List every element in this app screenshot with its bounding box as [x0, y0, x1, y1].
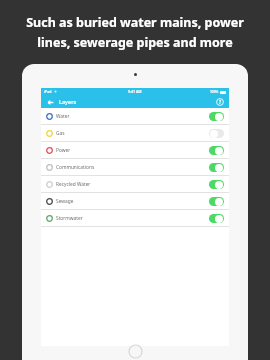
button[interactable]: Power	[41, 142, 229, 158]
staticText: lines, sewerage pipes and more	[37, 34, 233, 51]
button[interactable]: Toggle off	[209, 129, 224, 138]
staticText: Sewage	[56, 198, 74, 205]
staticText: ?	[219, 99, 222, 105]
button[interactable]: Help	[215, 97, 225, 107]
button[interactable]: Water	[41, 108, 229, 124]
staticText: Power	[56, 147, 71, 154]
staticText: Communications	[56, 164, 95, 171]
button[interactable]: Toggle on	[209, 112, 224, 121]
button[interactable]: Toggle on	[209, 180, 224, 189]
button[interactable]: Home	[128, 344, 143, 359]
staticText: iPad	[44, 89, 52, 94]
button[interactable]: Recycled Water	[41, 176, 229, 192]
staticText: Recycled Water	[56, 181, 91, 188]
button[interactable]: Toggle on	[209, 197, 224, 206]
staticText: 100%	[210, 90, 219, 94]
staticText: Stormwater	[56, 215, 83, 222]
staticText: Such as buried water mains, power	[26, 14, 244, 31]
staticText: Water	[56, 113, 70, 120]
button[interactable]: Gas	[41, 125, 229, 141]
button[interactable]: Toggle on	[209, 214, 224, 223]
button[interactable]: Toggle on	[209, 163, 224, 172]
button[interactable]: Toggle on	[209, 146, 224, 155]
staticText: Layers	[59, 98, 77, 105]
staticText: 9:41 AM	[128, 89, 142, 94]
button[interactable]: Communications	[41, 159, 229, 175]
button[interactable]: Sewage	[41, 193, 229, 209]
staticText: Gas	[56, 130, 65, 137]
button[interactable]: Stormwater	[41, 210, 229, 226]
button[interactable]: Back	[45, 97, 55, 107]
